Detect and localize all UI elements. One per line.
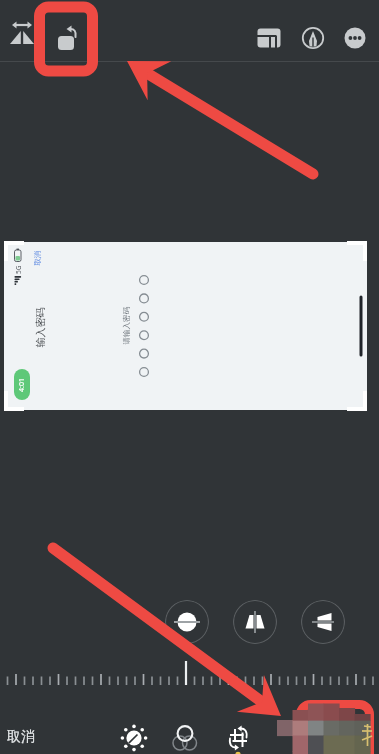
button[interactable]: Flip horizontal	[2, 13, 42, 53]
button[interactable]: Layout	[253, 22, 285, 54]
button[interactable]: Mirror vertical	[301, 600, 345, 644]
button[interactable]: More options	[339, 22, 371, 54]
button[interactable]: Flip vertical	[165, 600, 209, 644]
button[interactable]: Rotate	[46, 19, 86, 59]
button[interactable]: Markup	[297, 22, 329, 54]
button[interactable]: Crop	[218, 718, 258, 754]
staticText: 5G	[14, 265, 23, 274]
button[interactable]: Adjust	[114, 718, 154, 754]
button[interactable]: Mirror horizontal	[233, 600, 277, 644]
button[interactable]: 取消	[0, 718, 42, 754]
staticText: 取消	[7, 728, 35, 746]
staticText: 输入密码	[33, 307, 46, 347]
staticText: 取消	[33, 251, 42, 266]
button[interactable]: Filters	[165, 718, 205, 754]
staticText: 请输入密码	[121, 306, 130, 344]
staticText: 4:01	[17, 378, 27, 392]
